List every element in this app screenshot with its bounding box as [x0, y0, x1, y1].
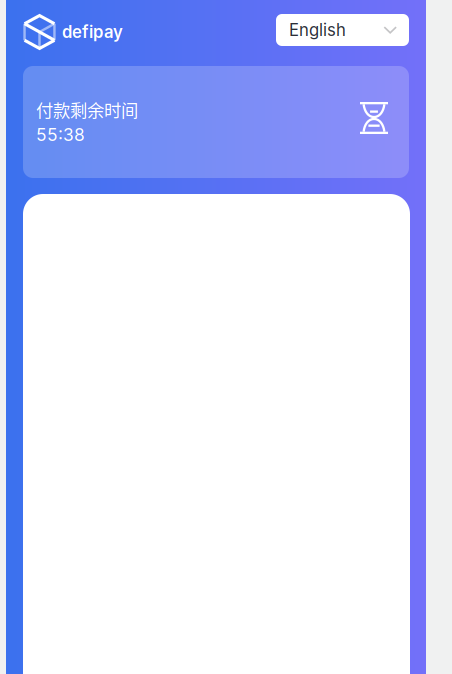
staticText: English: [289, 20, 346, 40]
button[interactable]: English: [276, 14, 409, 46]
staticText: defipay: [62, 22, 123, 42]
staticText: 付款剩余时间: [36, 97, 138, 122]
staticText: 55:38: [36, 124, 85, 145]
button[interactable]: defipay home: [23, 14, 123, 50]
